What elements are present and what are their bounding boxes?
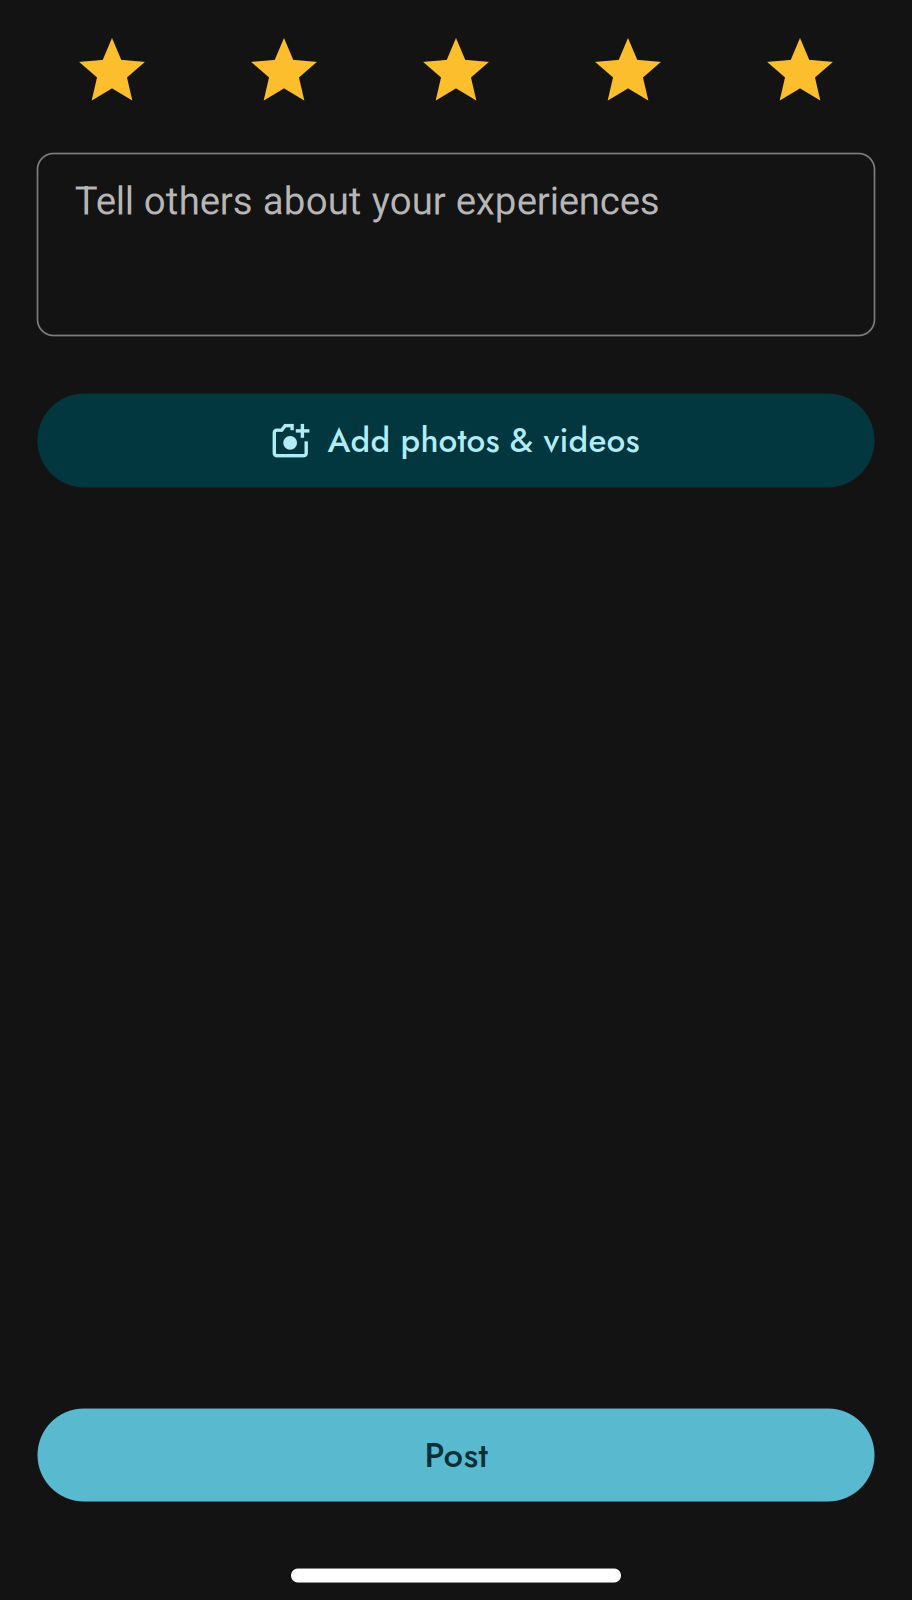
- staticText: Add photos & videos: [327, 416, 639, 465]
- button[interactable]: Rate 4 star: [553, 23, 703, 123]
- button[interactable]: Rate 3 star: [381, 23, 531, 123]
- staticText: Post: [424, 1430, 487, 1480]
- button[interactable]: Rate 5 star: [725, 23, 875, 123]
- button[interactable]: Rate 2 star: [209, 23, 359, 123]
- staticText: Tell others about your experiences: [75, 179, 660, 224]
- button[interactable]: Add photos & videos: [37, 393, 874, 487]
- button[interactable]: Post: [37, 1408, 874, 1501]
- button[interactable]: Tell others about your experiences: [37, 153, 874, 335]
- button[interactable]: Rate 1 star: [37, 23, 187, 123]
